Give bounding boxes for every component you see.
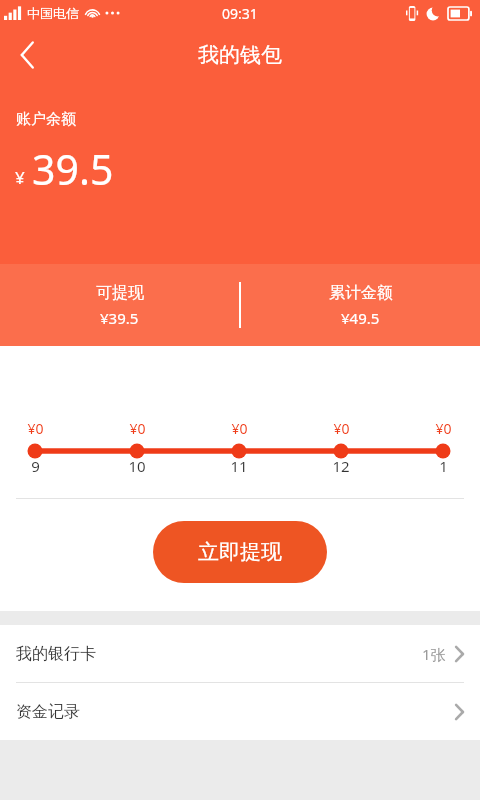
staticText: ¥49.5 [341, 308, 380, 328]
button[interactable]: 累计金额 [241, 264, 480, 346]
staticText: 我的钱包 [198, 42, 282, 68]
staticText: 39.5 [32, 141, 114, 197]
button[interactable]: 我的银行卡 [0, 625, 480, 682]
staticText: 资金记录 [16, 702, 80, 722]
staticText: 账户余额 [16, 110, 76, 129]
staticText: 累计金额 [329, 283, 393, 303]
staticText: 11 [230, 456, 248, 476]
staticText: ¥0 [27, 419, 44, 438]
staticText: 1张 [422, 644, 446, 664]
staticText: 立即提现 [198, 539, 282, 565]
staticText: 我的银行卡 [16, 644, 96, 664]
staticText: 12 [332, 456, 350, 476]
staticText: ¥0 [435, 419, 452, 438]
staticText: ¥0 [333, 419, 350, 438]
staticText: ¥0 [231, 419, 248, 438]
staticText: 9 [31, 456, 40, 476]
button[interactable]: Back [4, 32, 50, 78]
staticText: 1 [439, 456, 448, 476]
staticText: ¥0 [129, 419, 146, 438]
button[interactable]: 立即提现 [153, 521, 327, 583]
staticText: 09:31 [222, 4, 258, 23]
staticText: ¥ [15, 166, 25, 189]
staticText: 中国电信 [27, 5, 79, 21]
staticText: 10 [128, 456, 146, 476]
staticText: 可提现 [96, 283, 144, 303]
staticText: ¥39.5 [100, 308, 139, 328]
button[interactable]: 资金记录 [0, 683, 480, 740]
button[interactable]: 可提现 [0, 264, 239, 346]
